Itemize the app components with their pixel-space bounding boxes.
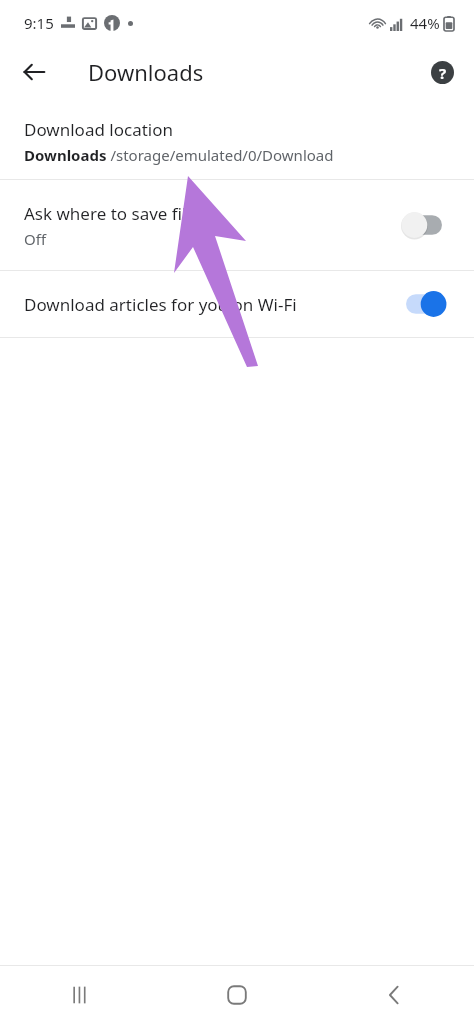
button[interactable]: Back: [316, 967, 474, 1023]
button[interactable]: Home: [158, 967, 316, 1023]
staticText: Downloads /storage/emulated/0/Download: [24, 145, 334, 165]
staticText: 44%: [410, 13, 440, 33]
button[interactable]: Back: [10, 48, 58, 96]
staticText: 9:15: [24, 13, 54, 33]
button[interactable]: On: [398, 288, 450, 320]
button[interactable]: Help: [418, 48, 466, 96]
staticText: Download location: [24, 118, 173, 141]
button[interactable]: Off: [398, 209, 450, 241]
staticText: Download articles for you on Wi-Fi: [24, 293, 297, 316]
button[interactable]: Recent apps: [0, 967, 158, 1023]
staticText: Ask where to save files: [24, 202, 205, 225]
staticText: Downloads: [88, 57, 204, 87]
staticText: Off: [24, 229, 47, 249]
staticText: ?: [439, 63, 447, 83]
button[interactable]: Download articles for you on Wi-Fi: [0, 271, 474, 337]
button[interactable]: Download location: [0, 112, 474, 179]
button[interactable]: Ask where to save files: [0, 180, 474, 270]
